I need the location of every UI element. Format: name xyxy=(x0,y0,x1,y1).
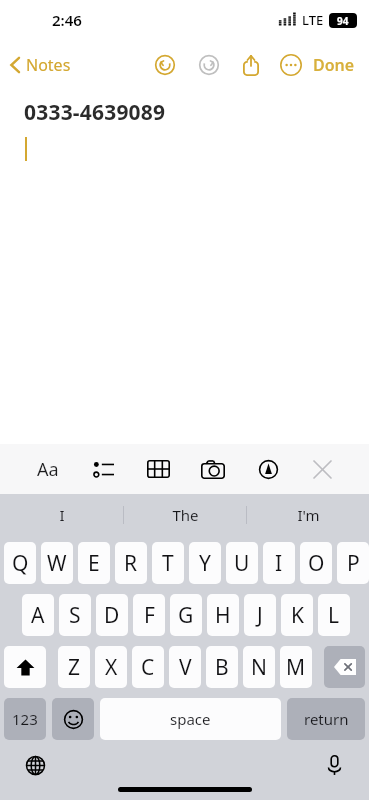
staticText: I xyxy=(59,505,65,525)
staticText: A xyxy=(31,601,45,630)
button[interactable]: H xyxy=(207,594,239,636)
staticText: T xyxy=(162,549,174,578)
staticText: LTE xyxy=(302,11,324,29)
staticText: M xyxy=(286,653,306,682)
staticText: X xyxy=(105,653,118,682)
staticText: U xyxy=(234,549,250,578)
staticText: B xyxy=(215,653,229,682)
button[interactable]: R xyxy=(115,542,147,584)
staticText: G xyxy=(178,601,194,630)
staticText: O xyxy=(308,549,325,578)
staticText: D xyxy=(104,601,120,630)
button[interactable]: Checklist xyxy=(83,449,123,489)
button[interactable]: I'm xyxy=(247,494,369,535)
button[interactable]: O xyxy=(300,542,332,584)
button[interactable]: Y xyxy=(189,542,221,584)
staticText: I'm xyxy=(297,505,320,525)
staticText: V xyxy=(179,653,192,682)
staticText: W xyxy=(47,549,67,578)
staticText: Notes xyxy=(26,54,71,76)
button[interactable]: I xyxy=(0,494,123,535)
button[interactable]: F xyxy=(133,594,165,636)
staticText: 2:46 xyxy=(52,10,82,30)
button[interactable]: L xyxy=(318,594,350,636)
button[interactable]: Shift xyxy=(4,646,46,688)
button[interactable]: Undo xyxy=(143,44,187,86)
staticText: space xyxy=(170,709,211,729)
staticText: Done xyxy=(313,54,355,76)
button[interactable]: Redo xyxy=(187,44,231,86)
staticText: Y xyxy=(199,549,211,578)
button[interactable]: P xyxy=(337,542,369,584)
button[interactable]: G xyxy=(170,594,202,636)
button[interactable]: E xyxy=(78,542,110,584)
button[interactable]: S xyxy=(59,594,91,636)
button[interactable]: Z xyxy=(58,646,90,688)
button[interactable]: space xyxy=(100,698,281,740)
button[interactable]: More options xyxy=(271,45,311,85)
button[interactable]: Markup xyxy=(248,449,288,489)
button[interactable]: V xyxy=(169,646,201,688)
staticText: I xyxy=(275,549,283,578)
button[interactable]: C xyxy=(132,646,164,688)
staticText: J xyxy=(257,601,263,630)
button[interactable]: 123 xyxy=(4,698,46,740)
staticText: C xyxy=(141,653,155,682)
button[interactable]: Dictation xyxy=(317,748,351,782)
staticText: N xyxy=(251,653,267,682)
staticText: L xyxy=(328,601,340,630)
button[interactable]: Q xyxy=(4,542,36,584)
button[interactable]: W xyxy=(41,542,73,584)
staticText: H xyxy=(215,601,231,630)
button[interactable]: return xyxy=(287,698,365,740)
staticText: 0333-4639089 xyxy=(24,98,166,127)
button[interactable]: K xyxy=(281,594,313,636)
button[interactable]: Emoji xyxy=(52,698,94,740)
staticText: Aa xyxy=(37,457,59,482)
button[interactable]: I xyxy=(263,542,295,584)
staticText: 94 xyxy=(337,14,349,28)
staticText: F xyxy=(144,601,155,630)
button[interactable]: T xyxy=(152,542,184,584)
staticText: The xyxy=(172,505,199,525)
staticText: S xyxy=(69,601,81,630)
button[interactable]: Backspace xyxy=(324,646,365,688)
button[interactable]: Camera xyxy=(193,449,233,489)
staticText: E xyxy=(88,549,100,578)
staticText: Q xyxy=(12,549,29,578)
button[interactable]: The xyxy=(124,494,246,535)
button[interactable]: M xyxy=(280,646,312,688)
button[interactable]: B xyxy=(206,646,238,688)
staticText: 123 xyxy=(12,709,38,729)
button[interactable]: U xyxy=(226,542,258,584)
button[interactable]: Close keyboard xyxy=(303,450,341,488)
staticText: P xyxy=(347,549,360,578)
button[interactable]: Table xyxy=(138,449,178,489)
staticText: K xyxy=(291,601,304,630)
staticText: R xyxy=(124,549,138,578)
button[interactable]: Switch keyboard xyxy=(18,748,52,782)
button[interactable]: Done xyxy=(311,46,369,84)
button[interactable]: J xyxy=(244,594,276,636)
button[interactable]: X xyxy=(95,646,127,688)
button[interactable]: Share xyxy=(231,45,271,85)
button[interactable]: Notes xyxy=(0,50,79,80)
staticText: return xyxy=(304,709,349,729)
button[interactable]: A xyxy=(22,594,54,636)
staticText: Z xyxy=(68,653,81,682)
button[interactable]: N xyxy=(243,646,275,688)
button[interactable]: D xyxy=(96,594,128,636)
button[interactable]: Aa xyxy=(28,449,68,489)
